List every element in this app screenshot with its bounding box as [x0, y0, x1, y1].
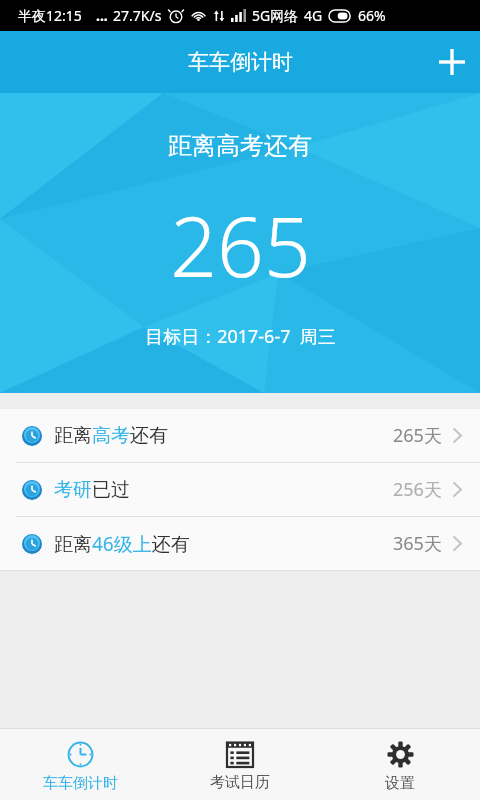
staticText: 66%	[358, 6, 386, 25]
staticText: 目标日：2017-6-7 周三	[145, 324, 336, 349]
button[interactable]: 距离高考还有	[0, 409, 480, 462]
staticText: 4G	[304, 6, 323, 25]
staticText: 265天	[393, 423, 442, 448]
button[interactable]: 考试日历	[160, 729, 320, 800]
staticText: 265	[170, 189, 311, 301]
staticText: 半夜12:15	[18, 6, 82, 25]
staticText: 车车倒计时	[188, 49, 293, 75]
staticText: 距离高考还有	[54, 424, 168, 448]
staticText: 设置	[385, 774, 415, 793]
staticText: 距离46级上还有	[54, 531, 190, 557]
staticText: 考试日历	[210, 773, 270, 792]
button[interactable]: 考研已过	[0, 463, 480, 516]
staticText: 365天	[393, 531, 442, 556]
staticText: 车车倒计时	[43, 774, 118, 793]
staticText: 距离高考还有	[168, 131, 312, 161]
staticText: 考研已过	[54, 478, 130, 502]
button[interactable]: 车车倒计时	[0, 729, 160, 800]
staticText: ...	[96, 6, 108, 25]
button[interactable]: 距离46级上还有	[0, 517, 480, 570]
staticText: 256天	[393, 477, 442, 502]
staticText: 27.7K/s	[113, 6, 162, 25]
button[interactable]: Add countdown	[424, 34, 480, 90]
button[interactable]: 设置	[320, 729, 480, 800]
staticText: 5G网络	[252, 6, 299, 25]
